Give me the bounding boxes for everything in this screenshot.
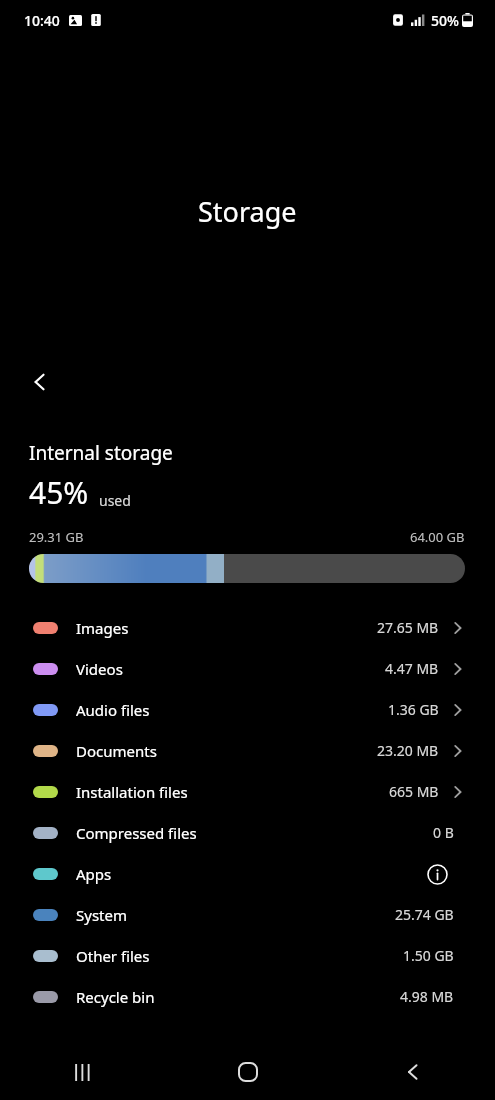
staticText: Internal storage (29, 440, 173, 466)
button[interactable]: Audio files (0, 689, 495, 730)
button[interactable]: Compressed files (0, 812, 495, 853)
staticText: Recycle bin (76, 987, 155, 1007)
staticText: Documents (76, 741, 157, 761)
staticText: 27.65 MB (377, 618, 439, 637)
button[interactable]: System (0, 894, 495, 935)
staticText: 23.20 MB (377, 741, 439, 760)
staticText: 64.00 GB (410, 528, 465, 546)
staticText: 29.31 GB (29, 528, 84, 546)
staticText: Storage (198, 193, 297, 230)
button[interactable]: Other files (0, 935, 495, 976)
staticText: 665 MB (389, 782, 439, 801)
button[interactable]: Installation files (0, 771, 495, 812)
staticText: Videos (76, 659, 123, 679)
button[interactable]: Home (165, 1044, 330, 1100)
button[interactable]: Videos (0, 648, 495, 689)
staticText: Audio files (76, 700, 150, 720)
staticText: used (99, 491, 131, 510)
staticText: 1.50 GB (403, 946, 454, 965)
button[interactable]: Recycle bin (0, 976, 495, 1017)
staticText: 45% (29, 472, 89, 513)
staticText: 0 B (433, 823, 454, 842)
staticText: Compressed files (76, 823, 197, 843)
staticText: System (76, 905, 127, 925)
button[interactable]: Apps (0, 853, 495, 894)
staticText: 1.36 GB (388, 700, 439, 719)
staticText: 25.74 GB (395, 905, 454, 924)
staticText: 50% (431, 11, 459, 30)
staticText: 10:40 (24, 11, 60, 30)
staticText: Images (76, 618, 129, 638)
staticText: Apps (76, 864, 112, 884)
staticText: Installation files (76, 782, 188, 802)
button[interactable]: Recents (0, 1044, 165, 1100)
button[interactable]: Apps info (420, 857, 454, 891)
button[interactable]: Back (16, 358, 64, 406)
staticText: 4.47 MB (385, 659, 439, 678)
button[interactable]: Images (0, 607, 495, 648)
staticText: 4.98 MB (400, 987, 454, 1006)
button[interactable]: Documents (0, 730, 495, 771)
button[interactable]: Back (330, 1044, 495, 1100)
staticText: Other files (76, 946, 150, 966)
